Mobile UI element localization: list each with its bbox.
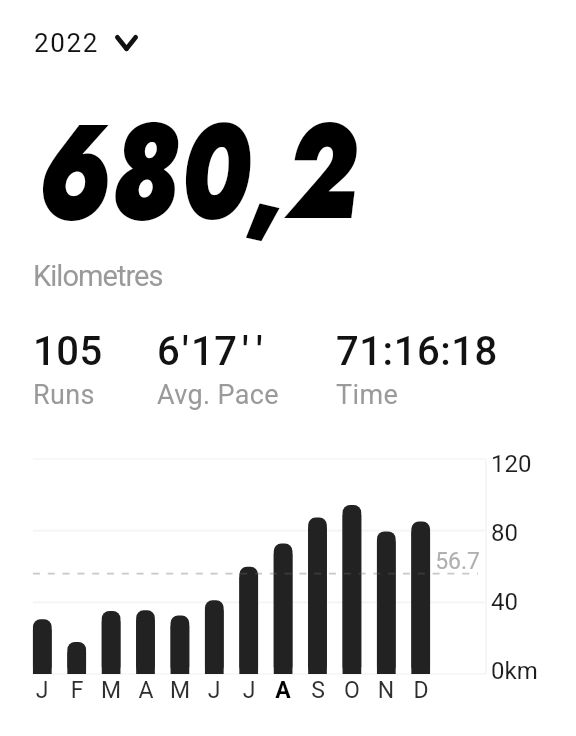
staticText: Avg. Pace bbox=[157, 379, 280, 411]
staticText: 40 bbox=[491, 588, 518, 616]
staticText: A bbox=[266, 677, 300, 704]
staticText: 680,2 bbox=[36, 76, 357, 268]
staticText: Time bbox=[336, 379, 399, 411]
staticText: D bbox=[404, 677, 438, 704]
staticText: N bbox=[369, 677, 403, 704]
staticText: 80 bbox=[491, 519, 518, 547]
staticText: O bbox=[335, 677, 369, 704]
staticText: ' bbox=[256, 328, 264, 375]
staticText: ' bbox=[242, 328, 250, 375]
other: Select year bbox=[115, 35, 138, 51]
staticText: 0km bbox=[491, 657, 538, 685]
staticText: J bbox=[232, 677, 266, 704]
staticText: F bbox=[60, 677, 94, 704]
staticText: 17 bbox=[191, 328, 238, 375]
staticText: 56.7 bbox=[410, 548, 480, 575]
staticText: A bbox=[129, 677, 163, 704]
staticText: J bbox=[25, 677, 59, 704]
button[interactable]: 2022 bbox=[26, 24, 146, 62]
staticText: J bbox=[197, 677, 231, 704]
staticText: M bbox=[94, 677, 128, 704]
staticText: M bbox=[163, 677, 197, 704]
staticText: 120 bbox=[491, 450, 532, 478]
staticText: Kilometres bbox=[33, 259, 163, 293]
staticText: 6 bbox=[157, 328, 181, 375]
staticText: 2022 bbox=[34, 28, 99, 58]
staticText: Runs bbox=[33, 379, 95, 411]
staticText: 71:16:18 bbox=[336, 328, 498, 375]
staticText: 105 bbox=[33, 328, 103, 375]
staticText: ' bbox=[182, 328, 190, 375]
staticText: S bbox=[301, 677, 335, 704]
